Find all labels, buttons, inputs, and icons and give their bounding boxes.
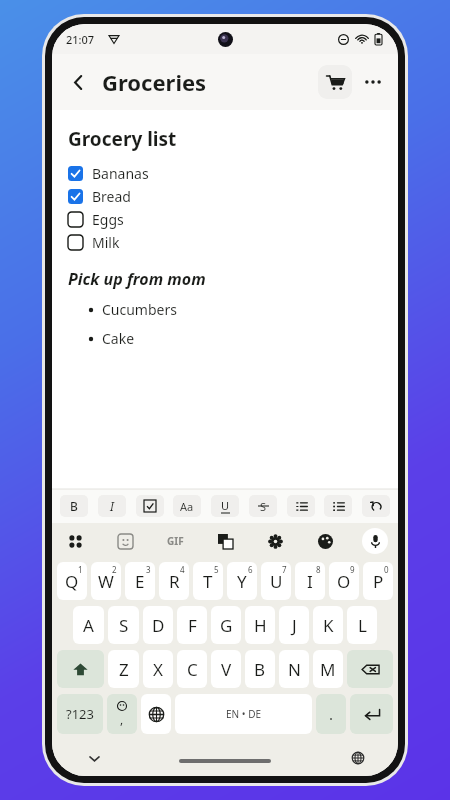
staticText: Cucumbers [102,300,177,319]
button[interactable]: T [193,562,223,600]
button[interactable]: Italic [98,495,126,517]
button[interactable]: O [329,562,359,600]
button[interactable]: B [245,650,275,688]
staticText: 5 [214,564,219,575]
button[interactable]: I [295,562,325,600]
staticText: Cake [102,329,135,348]
button[interactable]: GIF [162,528,188,554]
button[interactable]: Cucumbers [68,300,382,319]
staticText: I [307,570,313,593]
button[interactable]: C [177,650,207,688]
staticText: A [83,614,94,637]
staticText: . [329,704,334,724]
button[interactable]: U [261,562,291,600]
button[interactable]: Period [316,694,346,734]
staticText: P [373,570,384,593]
button[interactable]: N [279,650,309,688]
staticText: 3 [146,564,151,575]
staticText: U [221,498,230,513]
button[interactable]: W [91,562,121,600]
button[interactable]: Bread [68,185,382,208]
button[interactable]: Cake [68,329,382,348]
button[interactable]: Symbols [57,694,103,734]
staticText: Pick up from mom [68,268,206,290]
button[interactable]: Shift [57,650,104,688]
button[interactable]: V [211,650,241,688]
button[interactable]: F [177,606,207,644]
button[interactable]: E [125,562,155,600]
button[interactable]: Text style [173,495,201,517]
staticText: N [288,658,301,681]
staticText: Eggs [92,210,124,229]
button[interactable]: J [279,606,309,644]
button[interactable]: Bold [60,495,88,517]
button[interactable]: Hide keyboard [82,746,106,770]
button[interactable]: Checklist [136,495,164,517]
staticText: S [119,614,129,637]
button[interactable]: Emoji and comma [107,694,137,734]
button[interactable]: Stickers [112,528,138,554]
staticText: 21:07 [66,32,95,47]
button[interactable]: Apps [62,528,88,554]
staticText: C [187,658,198,681]
button[interactable]: Milk [68,231,382,254]
button[interactable]: Space [175,694,312,734]
button[interactable]: Voice input [362,528,388,554]
button[interactable]: H [245,606,275,644]
button[interactable]: Backspace [347,650,393,688]
button[interactable]: Enter [350,694,393,734]
button[interactable]: Strikethrough [249,495,277,517]
button[interactable]: Undo [362,495,390,517]
button[interactable]: G [211,606,241,644]
button[interactable]: A [73,606,104,644]
button[interactable]: Bananas [68,162,382,185]
staticText: B [254,658,266,681]
button[interactable]: R [159,562,189,600]
staticText: 7 [282,564,287,575]
button[interactable]: Numbered list [287,495,315,517]
button[interactable]: Q [57,562,87,600]
staticText: T [203,570,213,593]
staticText: Q [65,570,79,593]
button[interactable]: X [143,650,173,688]
staticText: E [135,570,145,593]
staticText: Groceries [102,67,207,97]
button[interactable]: Change language [141,694,171,734]
staticText: 4 [180,564,185,575]
button[interactable]: M [313,650,343,688]
staticText: J [292,614,297,637]
staticText: EN • DE [226,707,261,721]
staticText: 6 [248,564,253,575]
button[interactable]: Z [108,650,139,688]
button[interactable]: Themes [312,528,338,554]
staticText: 0 [384,564,389,575]
button[interactable]: Back [58,62,98,102]
button[interactable]: L [347,606,377,644]
staticText: Bananas [92,164,149,183]
button[interactable]: Bulleted list [324,495,352,517]
staticText: K [323,614,334,637]
button[interactable]: Shopping cart [318,65,352,99]
staticText: L [358,614,367,637]
button[interactable]: D [143,606,173,644]
staticText: 8 [316,564,321,575]
staticText: F [188,614,197,637]
staticText: X [153,658,163,681]
staticText: R [169,570,180,593]
staticText: M [320,658,336,681]
button[interactable]: Y [227,562,257,600]
staticText: W [98,570,114,593]
staticText: Bread [92,187,131,206]
button[interactable]: S [108,606,139,644]
staticText: 2 [112,564,117,575]
staticText: H [254,614,267,637]
button[interactable]: K [313,606,343,644]
staticText: Z [119,658,129,681]
button[interactable]: P [363,562,393,600]
button[interactable]: Settings [262,528,288,554]
button[interactable]: Eggs [68,208,382,231]
button[interactable]: Underline [211,495,239,517]
button[interactable]: More options [356,65,390,99]
button[interactable]: Language [346,746,370,770]
button[interactable]: Translate [212,528,238,554]
